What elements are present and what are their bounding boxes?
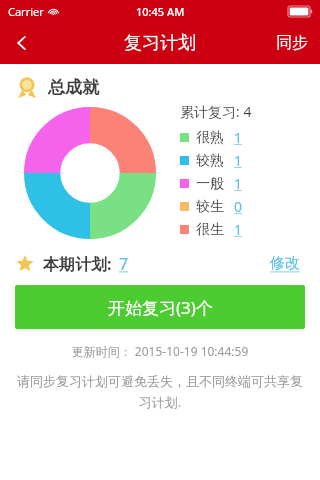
button[interactable]: 7: [119, 253, 129, 275]
staticText: 总成就: [48, 77, 99, 98]
button[interactable]: 很生: [180, 218, 320, 241]
staticText: 累计复习: 4: [180, 102, 252, 121]
staticText: 较生: [196, 198, 224, 216]
staticText: 很熟: [196, 129, 224, 147]
staticText: 同步: [276, 33, 308, 53]
button[interactable]: 较熟: [180, 149, 320, 172]
button[interactable]: 一般: [180, 172, 320, 195]
staticText: 0: [234, 197, 243, 216]
staticText: 更新时间： 2015-10-19 10:44:59: [0, 343, 320, 359]
staticText: 复习计划: [124, 32, 196, 55]
button[interactable]: 很熟: [180, 126, 320, 149]
staticText: 很生: [196, 221, 224, 239]
staticText: 1: [234, 128, 243, 147]
staticText: Carrier: [8, 4, 44, 19]
staticText: 1: [234, 151, 243, 170]
staticText: 修改: [270, 254, 300, 273]
button[interactable]: 开始复习(3)个: [15, 285, 305, 329]
staticText: 1: [234, 220, 243, 239]
button[interactable]: 修改: [266, 250, 304, 277]
button[interactable]: 较生: [180, 195, 320, 218]
button[interactable]: 同步: [264, 25, 320, 61]
staticText: 本期计划:: [43, 253, 112, 275]
staticText: 较熟: [196, 152, 224, 170]
staticText: 一般: [196, 175, 224, 193]
staticText: 开始复习(3)个: [108, 296, 213, 319]
staticText: 1: [234, 174, 243, 193]
button[interactable]: Back: [0, 22, 44, 64]
staticText: 10:45 AM: [136, 4, 185, 19]
staticText: 请同步复习计划可避免丢失，且不同终端可共享复习计划.: [16, 373, 304, 411]
